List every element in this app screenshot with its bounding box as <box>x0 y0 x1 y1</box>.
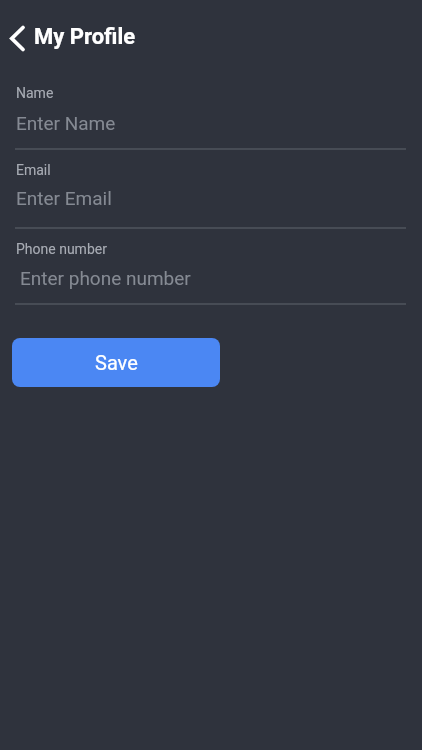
staticText: Phone number <box>16 241 107 257</box>
staticText: Save <box>95 351 138 374</box>
staticText: Enter Name <box>16 112 116 134</box>
button[interactable]: Enter phone number <box>0 261 422 303</box>
button[interactable]: Enter Email <box>0 182 422 226</box>
staticText: My Profile <box>34 24 136 50</box>
button[interactable] <box>2 22 32 54</box>
button[interactable]: Enter Name <box>0 106 422 149</box>
staticText: Email <box>16 162 51 178</box>
button[interactable]: Save <box>12 338 220 387</box>
staticText: Enter phone number <box>20 267 191 289</box>
staticText: Name <box>16 85 54 101</box>
staticText: Enter Email <box>16 187 112 209</box>
